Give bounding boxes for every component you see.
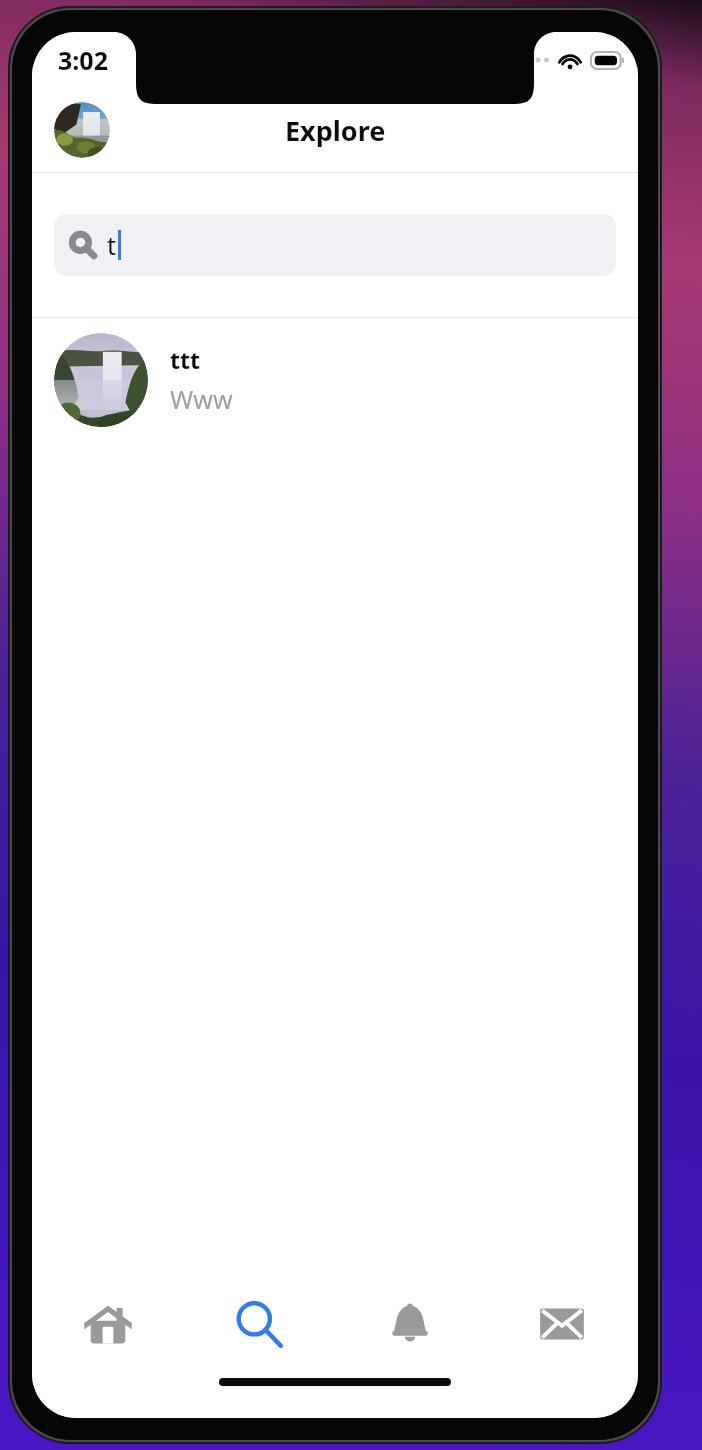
staticText: Explore xyxy=(285,112,386,149)
button[interactable]: Profile xyxy=(54,102,110,158)
staticText: 3:02 xyxy=(58,43,108,77)
button[interactable]: Home xyxy=(32,1270,183,1378)
staticText: t xyxy=(107,228,117,262)
button[interactable]: Messages xyxy=(486,1270,638,1378)
staticText: ttt xyxy=(170,344,200,375)
button[interactable]: Search xyxy=(183,1270,334,1378)
staticText: Www xyxy=(170,382,233,416)
button[interactable]: ttt xyxy=(32,318,638,442)
button[interactable]: Notifications xyxy=(334,1270,486,1378)
button[interactable]: t xyxy=(54,214,616,276)
